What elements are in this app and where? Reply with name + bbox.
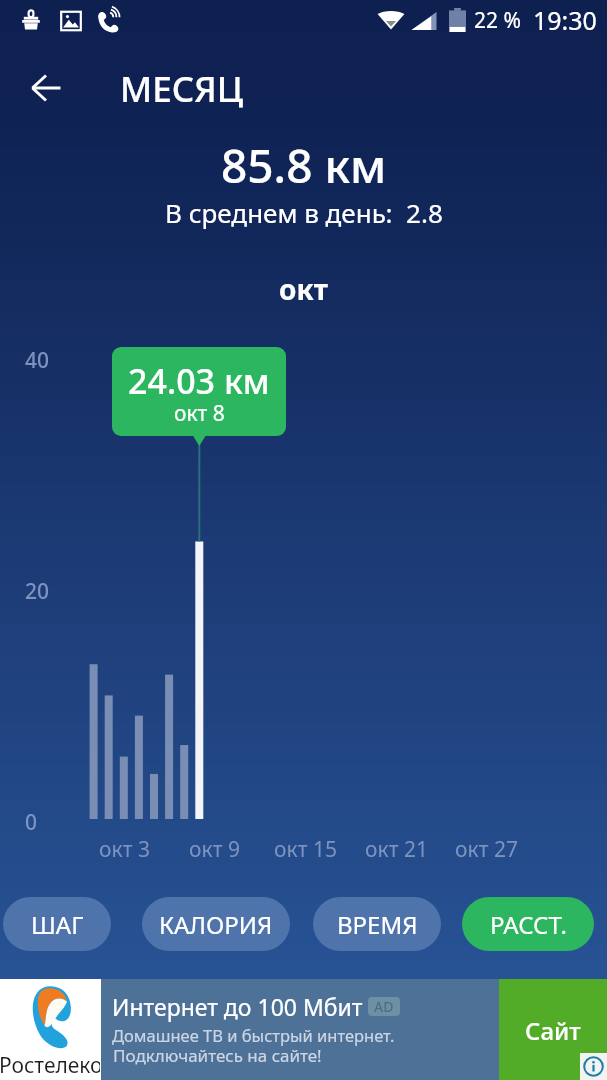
button[interactable]: 24.03 км	[112, 347, 286, 436]
button[interactable]: Back	[22, 64, 70, 112]
staticText: 85.8 км	[221, 134, 387, 197]
staticText: Подключайтесь на сайте!	[113, 1044, 322, 1067]
button[interactable]: ВРЕМЯ	[313, 897, 441, 951]
staticText: окт 8	[174, 399, 225, 428]
staticText: окт	[279, 270, 328, 308]
staticText: окт 9	[189, 835, 240, 864]
staticText: Домашнее ТВ и быстрый интернет.	[112, 1024, 395, 1046]
staticText: В среднем в день: 2.8	[165, 195, 443, 230]
button[interactable]: Интернет до 100 Мбит	[101, 979, 499, 1080]
staticText: AD	[374, 997, 394, 1016]
staticText: окт 27	[455, 835, 518, 864]
staticText: Интернет до 100 Мбит	[112, 991, 363, 1022]
staticText: КАЛОРИЯ	[159, 908, 273, 941]
staticText: 20	[25, 577, 50, 606]
button[interactable]: Ad information	[580, 1053, 607, 1080]
button[interactable]: РАССТ.	[462, 897, 594, 951]
button[interactable]: КАЛОРИЯ	[142, 897, 290, 951]
staticText: ШАГ	[31, 908, 84, 941]
staticText: окт 21	[365, 835, 428, 864]
staticText: окт 3	[99, 835, 150, 864]
button[interactable]: ШАГ	[3, 897, 111, 951]
staticText: 40	[25, 346, 50, 375]
staticText: 24.03 км	[128, 358, 270, 404]
staticText: 0	[25, 808, 38, 837]
staticText: РАССТ.	[490, 908, 567, 941]
staticText: 22 %	[474, 6, 521, 35]
staticText: ВРЕМЯ	[337, 908, 418, 941]
staticText: МЕСЯЦ	[120, 65, 244, 113]
staticText: окт 15	[274, 835, 337, 864]
staticText: Сайт	[525, 1014, 581, 1047]
button[interactable]: Сайт	[499, 979, 607, 1080]
staticText: Ростелеком	[0, 1051, 100, 1080]
staticText: 19:30	[533, 3, 597, 37]
